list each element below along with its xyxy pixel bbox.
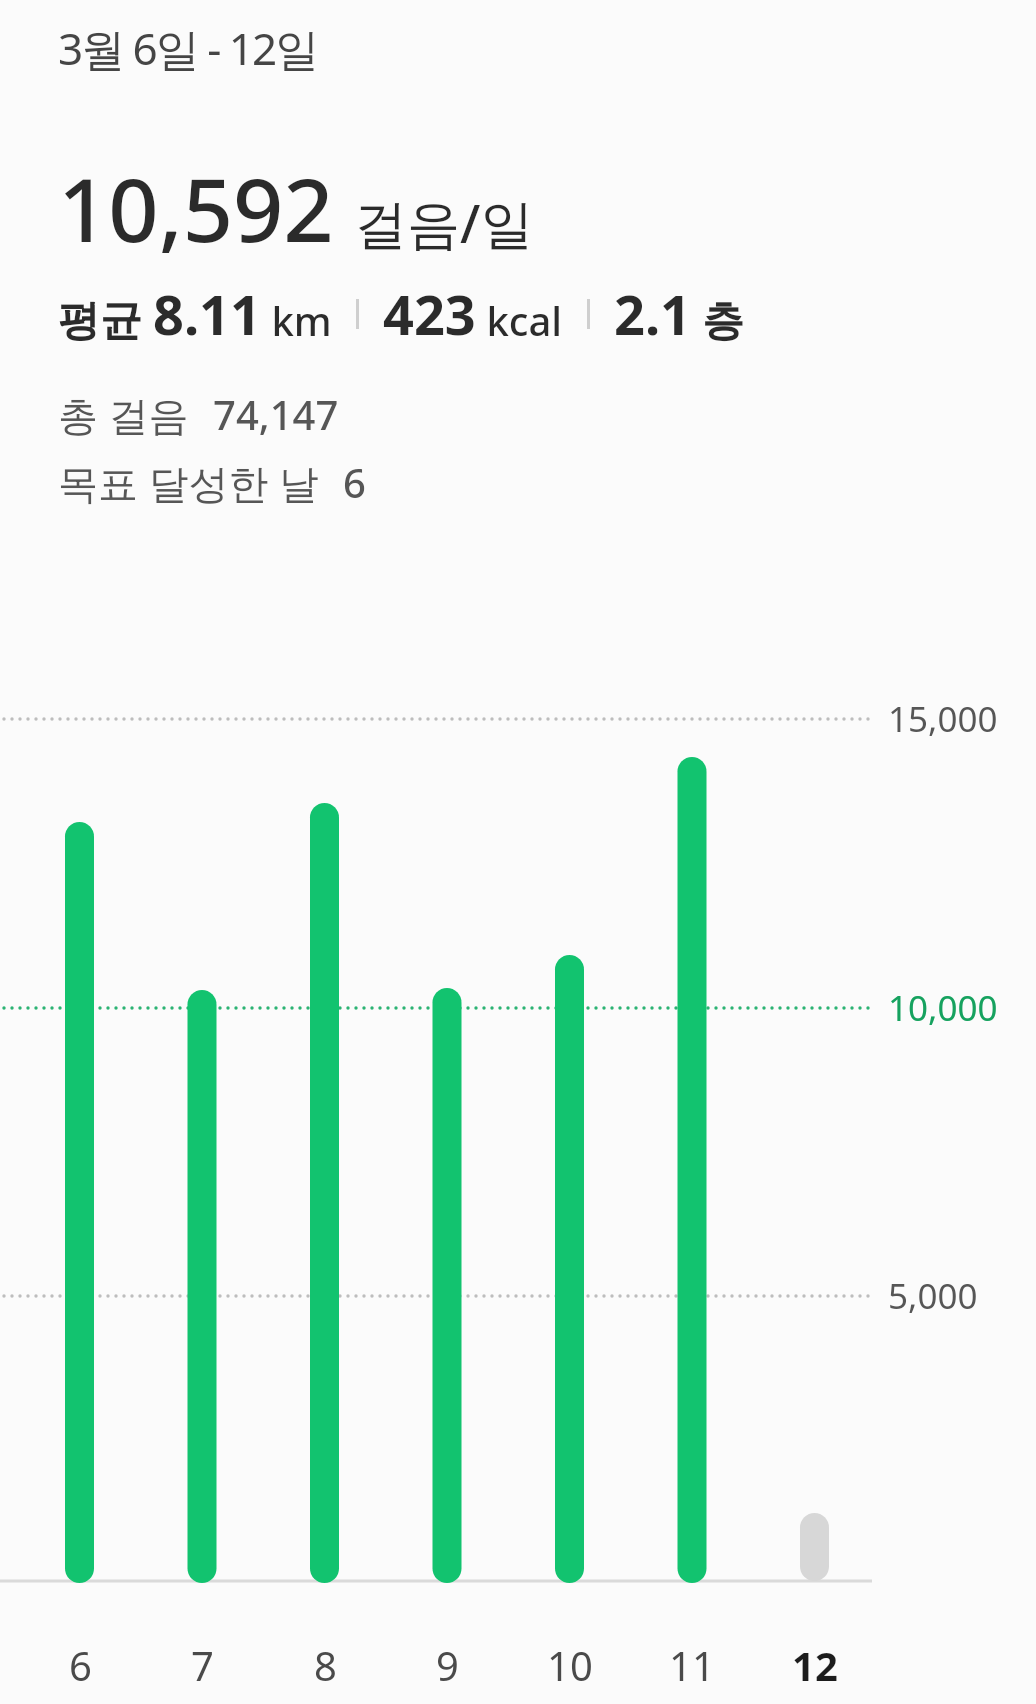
staticText: 12 [792,1638,838,1688]
staticText: 10 [547,1638,593,1688]
staticText: 6 [69,1638,92,1688]
staticText: 10,592 [58,148,334,268]
staticText: 7 [191,1638,214,1688]
staticText: 3월 6일 - 12일 [58,18,318,78]
staticText: 11 [669,1638,715,1688]
staticText: 평균 [58,290,153,347]
staticText: 9 [436,1638,459,1688]
staticText: 걸음/일 [354,186,534,258]
staticText: 10,000 [888,984,998,1032]
staticText: 총 걸음 [58,387,189,442]
staticText: km [261,293,332,347]
staticText: 2.1 [614,277,691,351]
staticText: 층 [691,290,744,347]
staticText: 6 [343,455,366,509]
staticText: 423 [383,277,476,351]
staticText: 74,147 [213,387,339,441]
staticText: 15,000 [888,695,998,743]
staticText: 8 [314,1638,337,1688]
staticText: 목표 달성한 날 [58,455,319,510]
staticText: kcal [476,293,563,347]
staticText: 5,000 [888,1272,978,1320]
staticText: 8.11 [153,277,261,351]
